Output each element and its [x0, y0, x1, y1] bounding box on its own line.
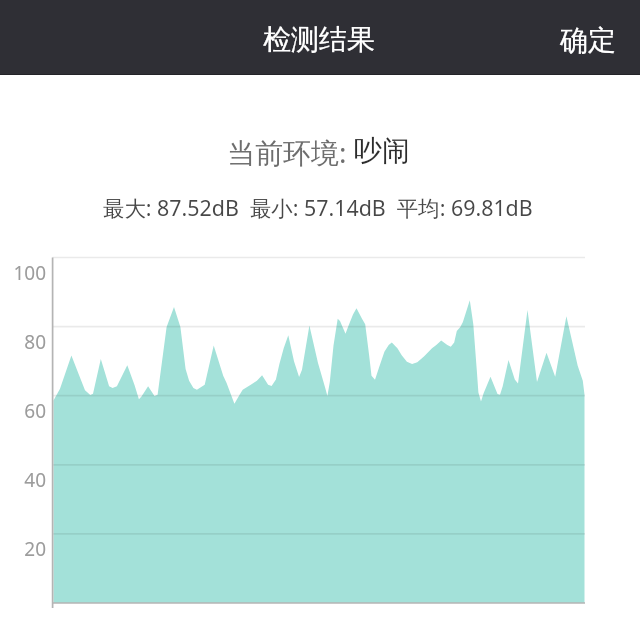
staticText: 60	[0, 398, 46, 424]
button[interactable]: 确定	[536, 4, 640, 71]
staticText: 20	[0, 536, 46, 562]
staticText: 当前环境:	[227, 133, 354, 171]
staticText: 40	[0, 467, 46, 493]
staticText: 检测结果	[263, 22, 375, 57]
staticText: 最大: 87.52dB 最小: 57.14dB 平均: 69.81dB	[103, 193, 533, 222]
staticText: 确定	[560, 23, 616, 58]
staticText: 100	[0, 260, 46, 286]
staticText: 吵闹	[354, 133, 410, 168]
staticText: 80	[0, 329, 46, 355]
